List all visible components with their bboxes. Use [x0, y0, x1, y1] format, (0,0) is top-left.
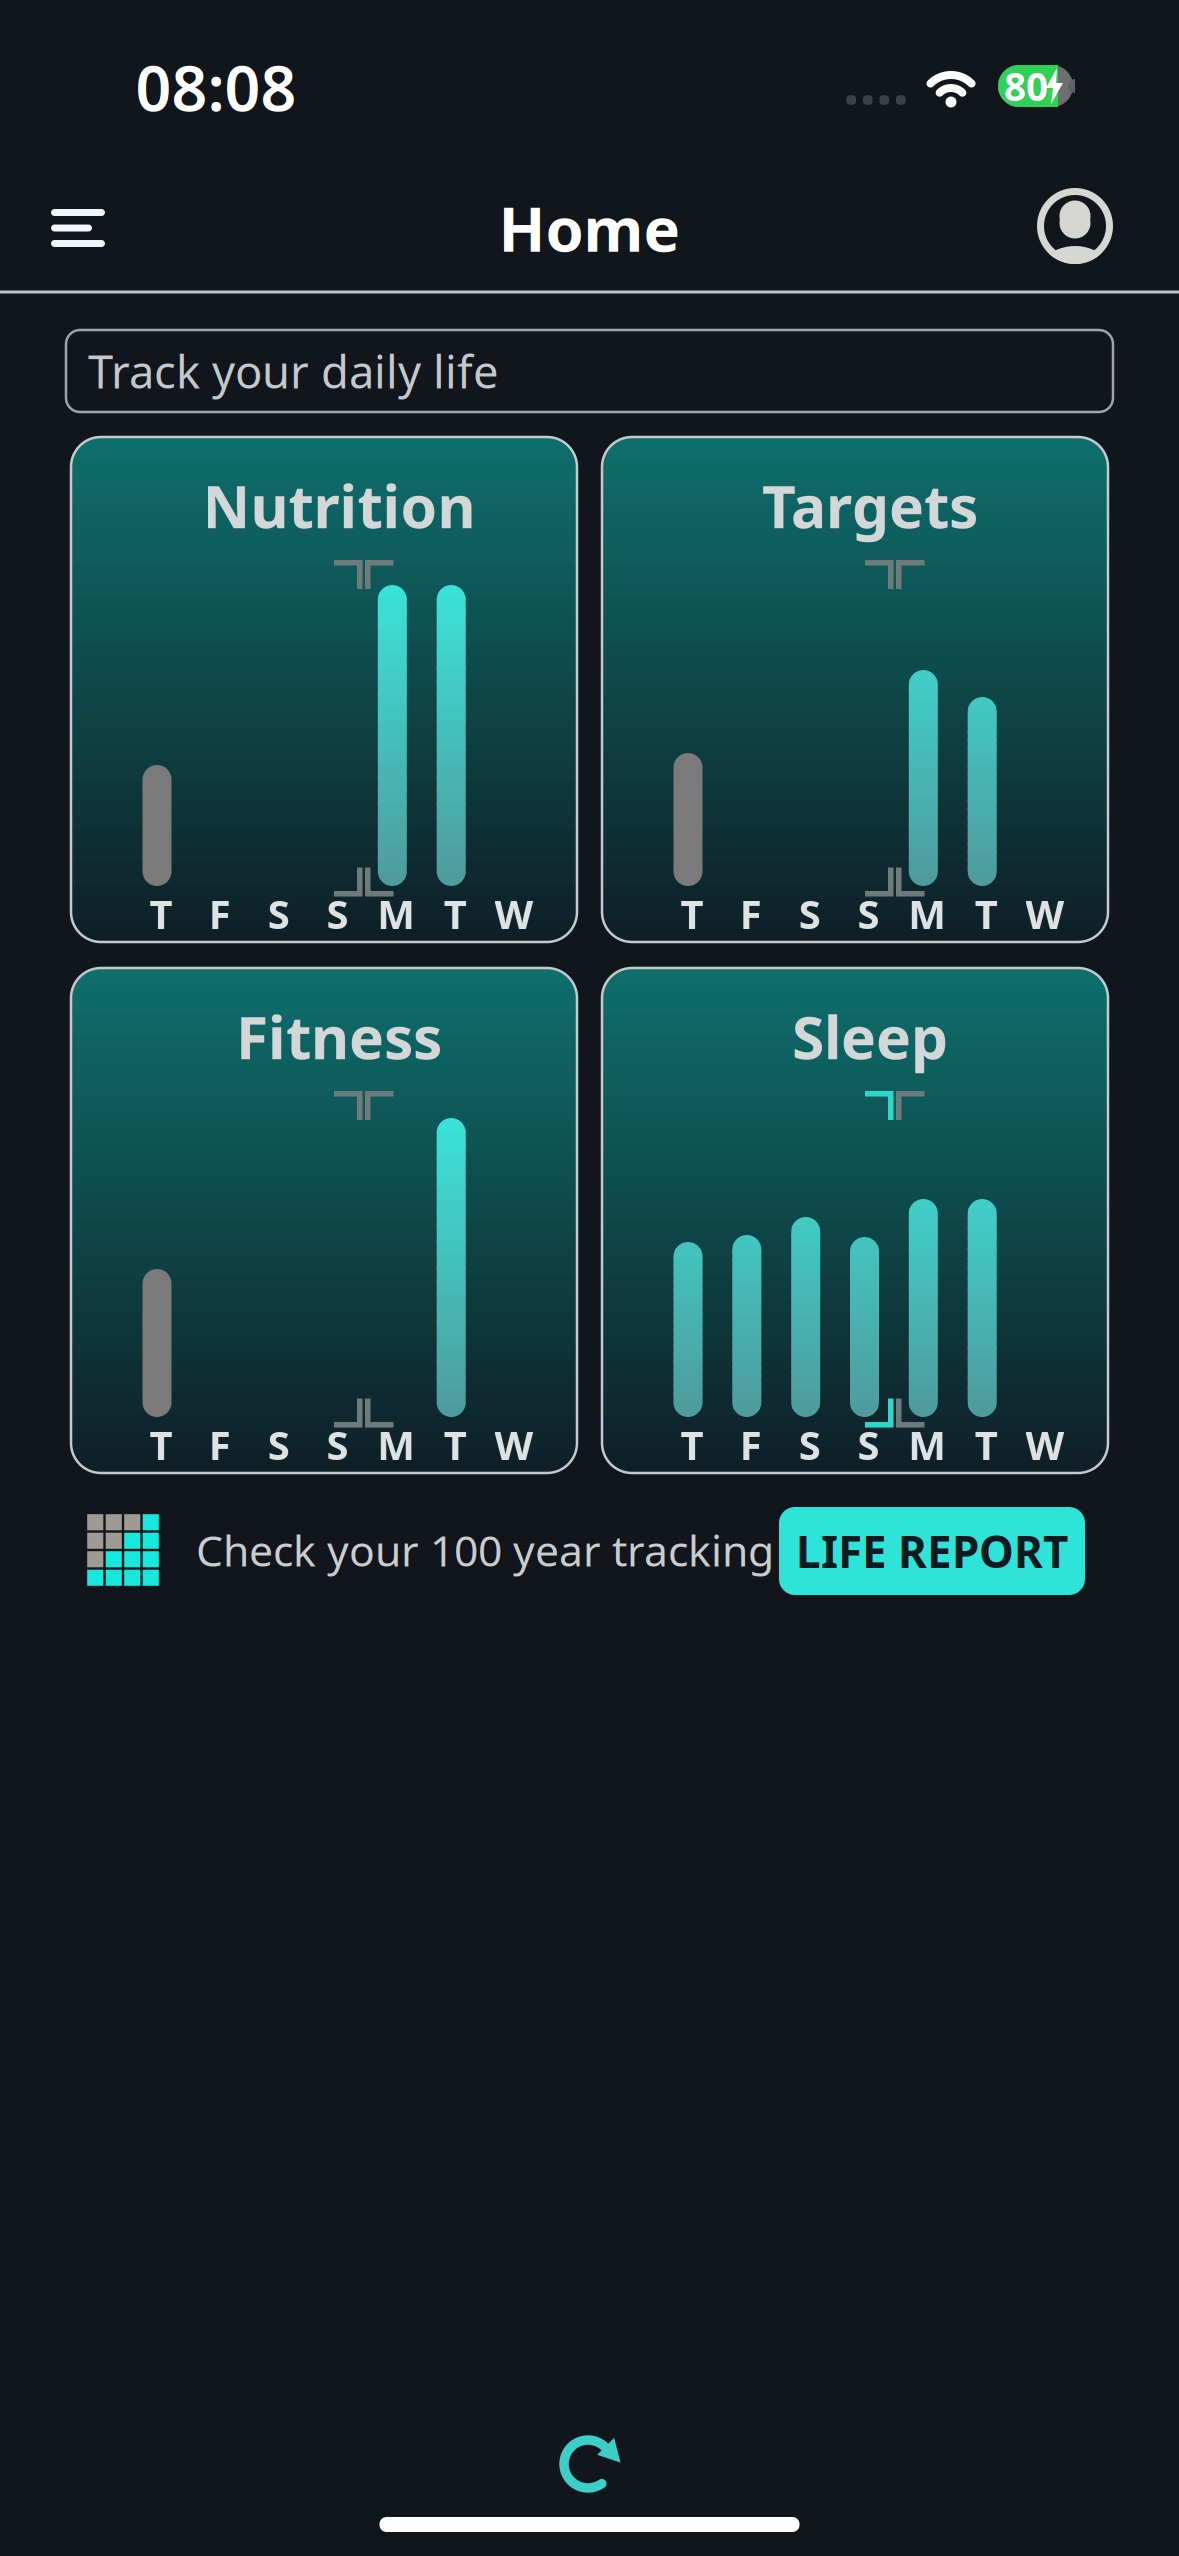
staticText: S — [857, 887, 879, 940]
staticText: F — [740, 1418, 762, 1471]
staticText: W — [1025, 887, 1064, 940]
staticText: M — [908, 887, 946, 940]
button[interactable]: Menu — [51, 209, 105, 247]
staticText: T — [975, 887, 998, 940]
staticText: T — [680, 887, 703, 940]
staticText: LIFE REPORT — [796, 1522, 1068, 1580]
staticText: S — [799, 1418, 821, 1471]
button[interactable]: Profile — [1037, 188, 1113, 264]
staticText: T — [680, 1418, 703, 1471]
button[interactable]: Fitness — [71, 968, 577, 1473]
staticText: T — [444, 1418, 467, 1471]
button[interactable]: Targets — [602, 437, 1108, 942]
staticText: Targets — [762, 466, 978, 544]
staticText: Nutrition — [202, 466, 475, 544]
button[interactable]: Track your daily life — [66, 330, 1113, 412]
staticText: S — [857, 1418, 879, 1471]
staticText: F — [209, 1418, 231, 1471]
staticText: M — [377, 1418, 415, 1471]
button[interactable]: Nutrition — [71, 437, 577, 942]
staticText: Fitness — [236, 997, 442, 1075]
staticText: S — [799, 887, 821, 940]
button[interactable]: Refresh — [558, 2432, 622, 2496]
staticText: M — [908, 1418, 946, 1471]
staticText: M — [377, 887, 415, 940]
staticText: T — [975, 1418, 998, 1471]
staticText: S — [268, 887, 290, 940]
staticText: Home — [498, 187, 680, 269]
staticText: 80 — [1004, 60, 1048, 112]
staticText: F — [740, 887, 762, 940]
staticText: Track your daily life — [88, 341, 499, 401]
staticText: T — [444, 887, 467, 940]
button[interactable]: Sleep — [602, 968, 1108, 1473]
staticText: W — [494, 887, 533, 940]
staticText: 08:08 — [135, 45, 296, 129]
staticText: Check your 100 year tracking — [196, 1522, 774, 1578]
staticText: T — [149, 1418, 172, 1471]
staticText: S — [268, 1418, 290, 1471]
staticText: T — [149, 887, 172, 940]
staticText: F — [209, 887, 231, 940]
staticText: W — [1025, 1418, 1064, 1471]
staticText: W — [494, 1418, 533, 1471]
button[interactable]: LIFE REPORT — [779, 1507, 1085, 1595]
staticText: S — [326, 887, 348, 940]
staticText: Sleep — [792, 997, 948, 1075]
staticText: S — [326, 1418, 348, 1471]
